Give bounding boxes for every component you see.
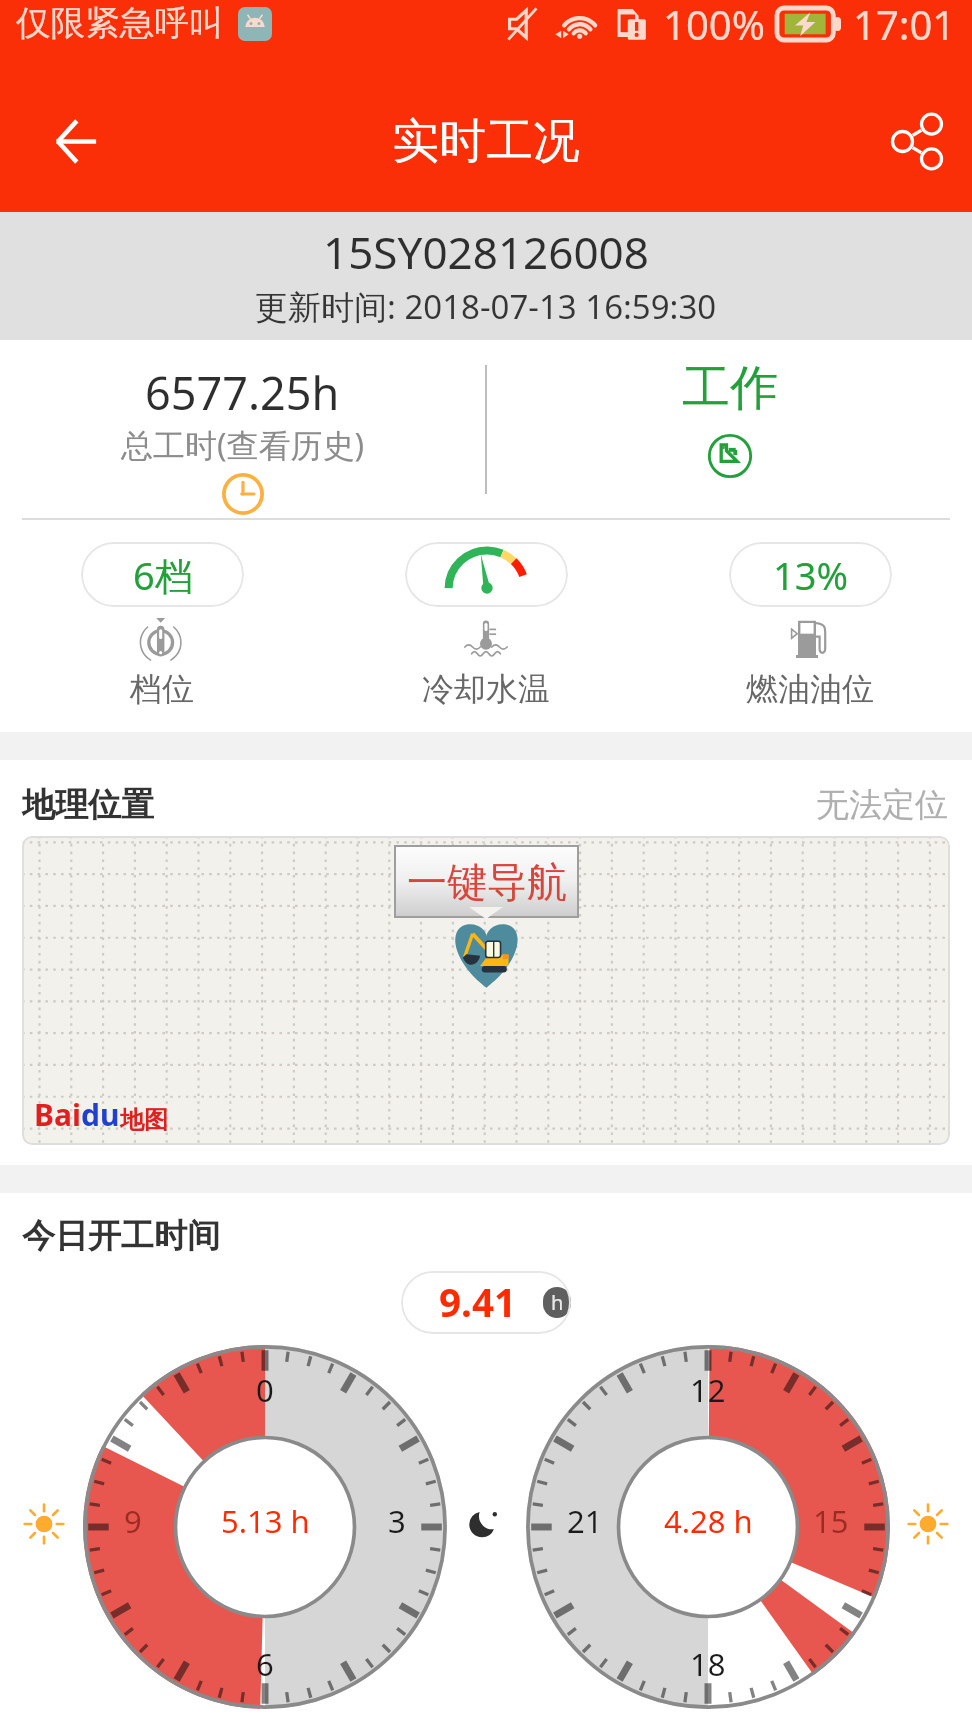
staticText: 15SY028126008 bbox=[323, 222, 649, 282]
button[interactable]: Share bbox=[870, 94, 964, 188]
staticText: du bbox=[81, 1094, 120, 1135]
staticText: 无法定位 bbox=[816, 784, 948, 826]
staticText: 6577.25h bbox=[145, 362, 340, 423]
button[interactable]: 9.41 bbox=[401, 1271, 571, 1334]
staticText: 冷却水温 bbox=[422, 669, 550, 709]
staticText: 总工时(查看历史) bbox=[121, 423, 365, 467]
staticText: 6 bbox=[256, 1643, 274, 1685]
staticText: 21 bbox=[567, 1500, 603, 1542]
staticText: 地理位置 bbox=[22, 784, 154, 826]
staticText: 5.13 h bbox=[221, 1500, 310, 1542]
staticText: 100% bbox=[663, 0, 765, 51]
staticText: 今日开工时间 bbox=[22, 1215, 220, 1257]
staticText: 工作 bbox=[682, 358, 778, 418]
staticText: 地图 bbox=[120, 1105, 168, 1135]
staticText: 仅限紧急呼叫 bbox=[16, 2, 224, 46]
staticText: 6档 bbox=[133, 549, 193, 601]
button[interactable]: 13% bbox=[729, 542, 892, 607]
staticText: 燃油油位 bbox=[746, 669, 874, 709]
staticText: 13% bbox=[773, 549, 849, 601]
button[interactable]: 一键导航 bbox=[394, 845, 579, 918]
staticText: 实时工况 bbox=[392, 112, 580, 171]
staticText: 15 bbox=[813, 1500, 849, 1542]
staticText: h bbox=[551, 1289, 564, 1316]
staticText: 4.28 h bbox=[664, 1500, 753, 1542]
button[interactable] bbox=[405, 542, 568, 607]
staticText: 一键导航 bbox=[407, 857, 567, 907]
staticText: 3 bbox=[388, 1500, 406, 1542]
staticText: 9 bbox=[124, 1500, 142, 1542]
staticText: 12 bbox=[690, 1369, 726, 1411]
button[interactable]: 6档 bbox=[81, 542, 244, 607]
staticText: 9.41 bbox=[439, 1276, 517, 1329]
staticText: 17:01 bbox=[853, 0, 956, 51]
staticText: 档位 bbox=[130, 669, 194, 709]
staticText: 更新时间: 2018-07-13 16:59:30 bbox=[255, 284, 717, 329]
button[interactable]: 一键导航 bbox=[22, 836, 950, 1145]
button[interactable]: Back bbox=[28, 94, 122, 188]
staticText: 18 bbox=[690, 1643, 726, 1685]
staticText: Bai bbox=[34, 1094, 81, 1135]
staticText: 0 bbox=[256, 1369, 274, 1411]
